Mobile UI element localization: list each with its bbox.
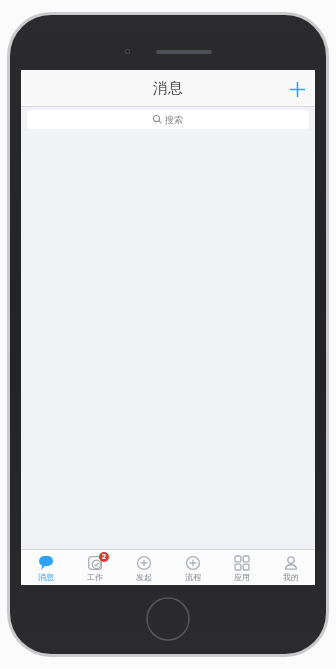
staticText: 应用: [234, 572, 250, 582]
button[interactable]: 消息: [21, 550, 70, 585]
button[interactable]: 应用: [217, 550, 266, 585]
staticText: 工作: [87, 572, 103, 582]
staticText: 2: [102, 552, 107, 562]
button[interactable]: New message: [279, 71, 315, 107]
button[interactable]: 我的: [266, 550, 315, 585]
staticText: 搜索: [165, 114, 183, 125]
staticText: 消息: [38, 572, 54, 582]
button[interactable]: 发起: [119, 550, 168, 585]
button[interactable]: 2: [70, 550, 119, 585]
button[interactable]: 流程: [168, 550, 217, 585]
button[interactable]: 搜索: [27, 110, 309, 129]
staticText: 消息: [153, 79, 183, 98]
staticText: 发起: [136, 572, 152, 582]
staticText: 我的: [283, 572, 299, 582]
staticText: 流程: [185, 572, 201, 582]
